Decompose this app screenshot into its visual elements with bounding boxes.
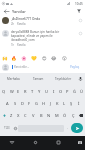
staticText: Merhaba bbox=[7, 77, 20, 81]
button[interactable]: X bbox=[15, 109, 22, 121]
staticText: F bbox=[28, 101, 31, 106]
staticText: Yanıt ekle... bbox=[14, 65, 30, 69]
staticText: N bbox=[47, 113, 51, 118]
button[interactable]: Shift bbox=[0, 109, 8, 121]
staticText: Ü bbox=[80, 89, 83, 94]
button[interactable]: Emoji bbox=[12, 123, 18, 133]
button[interactable]: O bbox=[57, 85, 64, 97]
button[interactable]: ?123 bbox=[1, 123, 12, 133]
button[interactable]: Send bbox=[71, 123, 83, 133]
button[interactable]: Teşekkürler bbox=[51, 73, 76, 85]
button[interactable]: M bbox=[53, 109, 61, 121]
staticText: 🔥 bbox=[11, 56, 17, 61]
staticText: D bbox=[21, 101, 24, 106]
button[interactable]: Back bbox=[0, 7, 12, 15]
button[interactable]: Q bbox=[0, 85, 8, 97]
button[interactable]: Back bbox=[0, 136, 24, 148]
button[interactable]: I bbox=[50, 85, 57, 97]
button[interactable]: Backspace bbox=[77, 109, 85, 121]
staticText: Paylaş bbox=[70, 65, 80, 69]
button[interactable]: P bbox=[64, 85, 71, 97]
staticText: Tamam bbox=[33, 77, 44, 81]
button[interactable]: V bbox=[29, 109, 37, 121]
button[interactable]: Like bbox=[78, 18, 83, 23]
staticText: Z bbox=[10, 113, 13, 118]
staticText: 🙌 bbox=[2, 56, 8, 61]
button[interactable]: F bbox=[26, 97, 33, 109]
button[interactable]: H bbox=[40, 97, 47, 109]
button[interactable]: Recents bbox=[47, 136, 70, 148]
button[interactable]: 😂 bbox=[49, 54, 59, 62]
button[interactable]: A bbox=[3, 97, 11, 109]
staticText: M bbox=[55, 113, 59, 118]
button[interactable]: Ğ bbox=[71, 85, 78, 97]
button[interactable]: Ö bbox=[61, 109, 69, 121]
staticText: C bbox=[24, 113, 27, 118]
button[interactable]: G bbox=[33, 97, 40, 109]
staticText: Ö bbox=[63, 113, 67, 118]
staticText: Ş bbox=[70, 101, 73, 106]
staticText: O bbox=[59, 89, 63, 94]
button[interactable]: U bbox=[43, 85, 50, 97]
staticText: V bbox=[32, 113, 35, 118]
button[interactable]: N bbox=[45, 109, 53, 121]
button[interactable]: Home bbox=[24, 136, 47, 148]
button[interactable]: T bbox=[29, 85, 36, 97]
staticText: S bbox=[14, 101, 17, 106]
staticText: E bbox=[17, 89, 20, 94]
staticText: H bbox=[42, 101, 45, 106]
button[interactable]: K bbox=[54, 97, 61, 109]
button[interactable]: 😮 bbox=[59, 54, 69, 62]
button[interactable]: Like bbox=[78, 31, 83, 36]
staticText: Y bbox=[38, 89, 41, 94]
staticText: 2h bbox=[11, 22, 15, 26]
staticText: 😂 bbox=[51, 56, 57, 61]
staticText: Ğ bbox=[73, 89, 76, 94]
staticText: Yanıtlar bbox=[12, 9, 26, 14]
button[interactable]: Hide keyboard bbox=[76, 139, 83, 146]
staticText: W bbox=[10, 89, 14, 94]
button[interactable]: W bbox=[8, 85, 15, 97]
button[interactable]: 💛 bbox=[29, 54, 39, 62]
staticText: L bbox=[63, 101, 66, 106]
button[interactable]: Merhaba bbox=[0, 73, 26, 85]
button[interactable]: D bbox=[19, 97, 26, 109]
staticText: G bbox=[35, 101, 38, 106]
button[interactable]: B bbox=[37, 109, 45, 121]
button[interactable]: Voice input bbox=[76, 73, 85, 85]
staticText: Yanıtla bbox=[17, 43, 26, 47]
button[interactable]: Ü bbox=[78, 85, 85, 97]
button[interactable]: L bbox=[61, 97, 68, 109]
staticText: Teşekkürler bbox=[55, 77, 72, 81]
button[interactable]: Z bbox=[8, 109, 15, 121]
staticText: R bbox=[24, 89, 27, 94]
button[interactable]: C bbox=[22, 109, 29, 121]
staticText: _AsDinor6771 Onda bbox=[11, 17, 41, 21]
button[interactable]: Ç bbox=[69, 109, 77, 121]
staticText: 10:45 bbox=[75, 2, 83, 6]
button[interactable]: Filter bbox=[74, 7, 84, 15]
staticText: Yanıtla bbox=[17, 22, 26, 26]
staticText: derya0x8888 Bunun için harika bir kapasi… bbox=[11, 30, 60, 42]
button[interactable]: J bbox=[47, 97, 54, 109]
button[interactable]: E bbox=[15, 85, 22, 97]
staticText: X bbox=[17, 113, 20, 118]
staticText: A bbox=[6, 101, 9, 106]
button[interactable]: 🔥 bbox=[9, 54, 19, 62]
button[interactable]: 🙌 bbox=[0, 54, 9, 62]
button[interactable]: R bbox=[22, 85, 29, 97]
staticText: 💛 bbox=[31, 56, 37, 61]
button[interactable]: Y bbox=[36, 85, 43, 97]
staticText: 🌸 bbox=[21, 56, 27, 61]
staticText: 1h bbox=[11, 43, 15, 47]
button[interactable]: S bbox=[11, 97, 19, 109]
staticText: B bbox=[40, 113, 43, 118]
button[interactable]: Ş bbox=[68, 97, 75, 109]
button[interactable]: Tamam bbox=[26, 73, 51, 85]
button[interactable]: 😍 bbox=[39, 54, 49, 62]
button[interactable]: İ bbox=[75, 97, 82, 109]
button[interactable]: 🌸 bbox=[19, 54, 29, 62]
button[interactable]: Paylaş bbox=[68, 64, 83, 70]
